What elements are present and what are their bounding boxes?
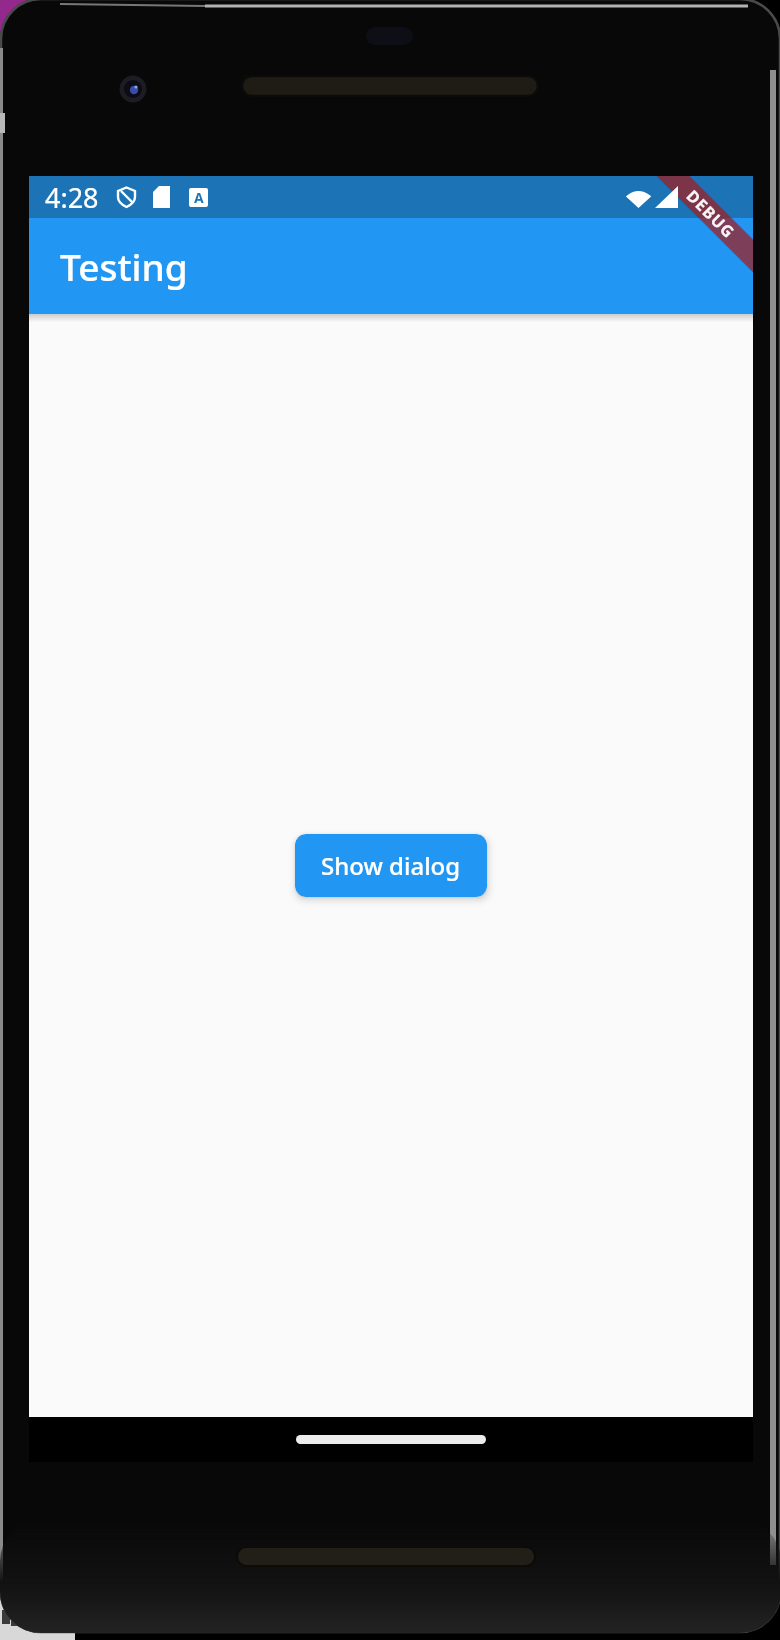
staticText: 4:28: [45, 179, 99, 216]
button[interactable]: [296, 1435, 486, 1444]
staticText: DEBUG: [682, 185, 740, 243]
staticText: Show dialog: [321, 849, 461, 882]
staticText: A: [194, 188, 204, 207]
staticText: Testing: [60, 241, 188, 291]
button[interactable]: Show dialog: [295, 834, 487, 897]
